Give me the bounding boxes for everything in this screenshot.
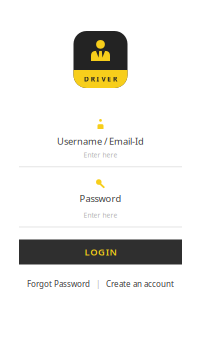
staticText: Create an account bbox=[106, 278, 174, 289]
staticText: | bbox=[90, 278, 106, 289]
button[interactable]: Create an account bbox=[106, 278, 174, 289]
staticText: Username / Email-Id bbox=[57, 135, 144, 147]
staticText: Forgot Password bbox=[27, 278, 90, 289]
staticText: Enter here bbox=[83, 150, 117, 159]
button[interactable]: Forgot Password bbox=[27, 278, 90, 289]
button[interactable]: LOGIN bbox=[19, 239, 182, 264]
staticText: DRIVER bbox=[84, 75, 117, 83]
staticText: Password bbox=[79, 192, 121, 205]
staticText: Enter here bbox=[83, 211, 117, 219]
staticText: LOGIN bbox=[84, 246, 117, 258]
